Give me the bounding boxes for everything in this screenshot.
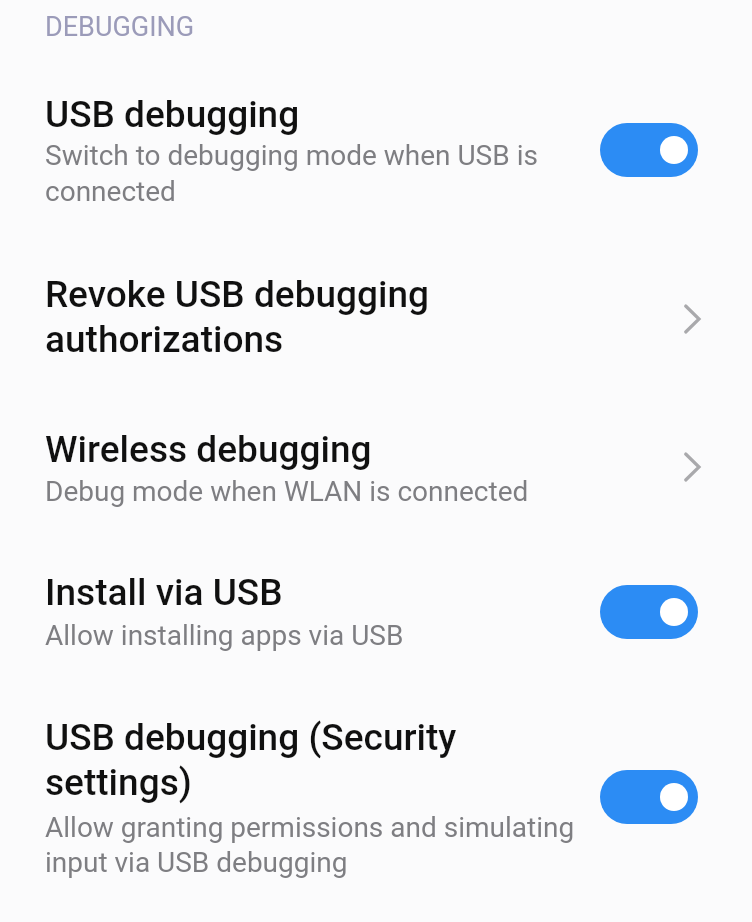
button[interactable]: USB debugging [0,78,752,215]
staticText: Install via USB [45,571,283,614]
button[interactable]: USB debugging (Security [0,700,752,885]
staticText: Switch to debugging mode when USB is [45,139,538,172]
staticText: DEBUGGING [45,11,195,43]
staticText: Allow installing apps via USB [45,619,404,652]
button[interactable]: Revoke USB debugging [0,258,752,370]
button[interactable]: Wireless debugging [0,415,752,515]
staticText: Revoke USB debugging [45,273,430,316]
staticText: input via USB debugging [45,846,348,879]
staticText: settings) [45,761,192,804]
button[interactable] [600,585,698,639]
staticText: Wireless debugging [45,428,372,471]
staticText: USB debugging (Security [45,716,457,759]
button[interactable] [600,123,698,177]
staticText: USB debugging [45,93,300,136]
button[interactable] [600,770,698,824]
staticText: authorizations [45,318,284,361]
staticText: Allow granting permissions and simulatin… [45,811,575,844]
staticText: connected [45,175,176,208]
staticText: Debug mode when WLAN is connected [45,475,529,508]
button[interactable]: Install via USB [0,558,752,658]
